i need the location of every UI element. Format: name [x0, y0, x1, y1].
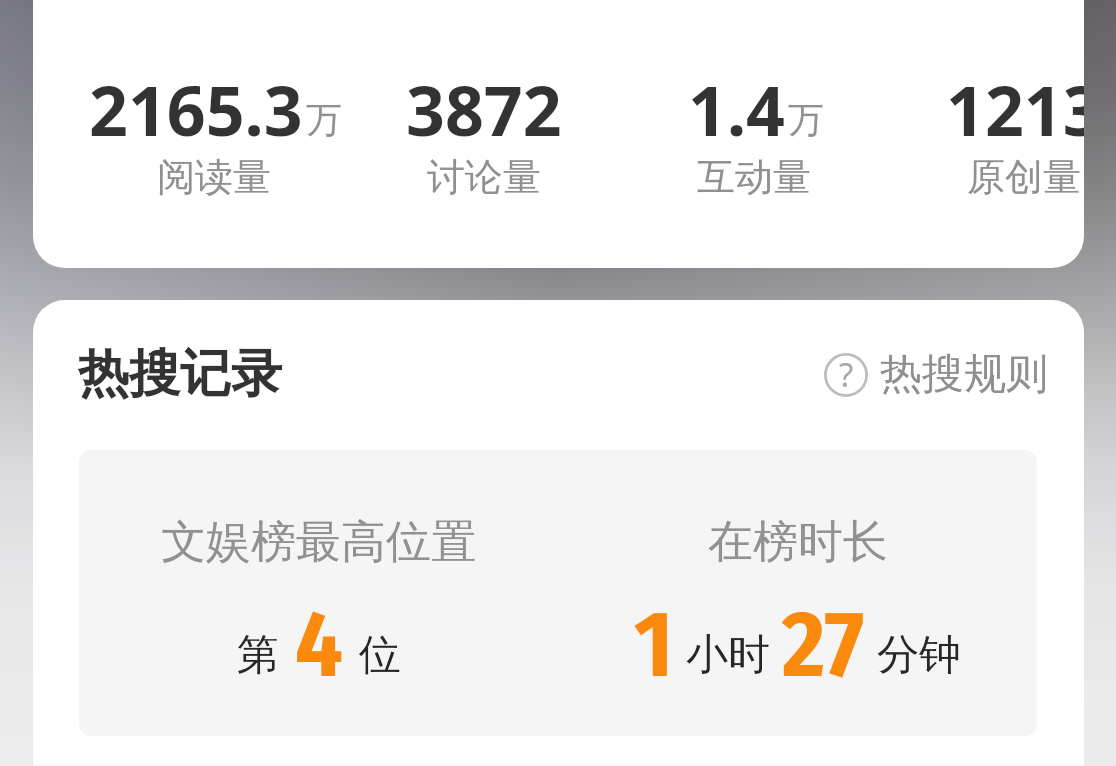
- staticText: 原创量: [967, 153, 1081, 201]
- staticText: 万: [306, 97, 342, 142]
- staticText: 27: [782, 589, 865, 701]
- staticText: 阅读量: [157, 153, 271, 201]
- staticText: 分钟: [877, 629, 961, 682]
- staticText: 1.4: [688, 63, 785, 156]
- staticText: ?: [839, 352, 854, 396]
- staticText: 1213: [946, 63, 1084, 156]
- staticText: 热搜记录: [78, 342, 282, 406]
- staticText: 互动量: [697, 153, 811, 201]
- staticText: 在榜时长: [708, 514, 888, 571]
- staticText: 1: [634, 589, 674, 701]
- staticText: 热搜规则: [880, 348, 1048, 401]
- staticText: 3872: [406, 63, 562, 156]
- other: 热搜规则说明: [824, 353, 868, 397]
- button[interactable]: 2165.3: [33, 0, 1084, 268]
- staticText: 2165.3: [89, 63, 303, 156]
- staticText: 小时: [686, 629, 770, 682]
- staticText: 文娱榜最高位置: [161, 514, 476, 571]
- staticText: 第: [237, 629, 279, 682]
- staticText: 4: [295, 589, 343, 701]
- staticText: 位: [359, 629, 401, 682]
- staticText: 万: [788, 97, 824, 142]
- staticText: 讨论量: [427, 153, 541, 201]
- button[interactable]: 热搜规则说明: [824, 348, 1048, 401]
